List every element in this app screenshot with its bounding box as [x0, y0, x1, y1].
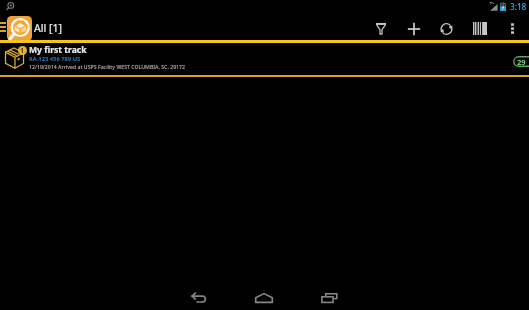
- button[interactable]: Open navigation drawer: [0, 14, 7, 43]
- button[interactable]: Recent apps: [313, 284, 346, 310]
- button[interactable]: Filter: [364, 14, 397, 43]
- staticText: 3:18: [510, 1, 527, 12]
- button[interactable]: Home: [247, 284, 280, 310]
- button[interactable]: Scan barcode: [463, 14, 496, 43]
- button[interactable]: Add track: [397, 14, 430, 43]
- button[interactable]: Refresh: [430, 14, 463, 43]
- staticText: 12/19/2014 Arrived at USPS Facility WEST…: [29, 63, 186, 70]
- button[interactable]: Back: [181, 284, 214, 310]
- staticText: RA 123 456 789 US: [29, 55, 81, 63]
- button[interactable]: More options: [496, 14, 529, 43]
- staticText: 1: [20, 46, 25, 55]
- button[interactable]: 1: [0, 42, 529, 75]
- staticText: All [1]: [34, 21, 63, 35]
- button[interactable]: 29 events: [513, 56, 529, 67]
- staticText: My first track: [29, 44, 87, 56]
- staticText: 29: [517, 57, 526, 67]
- button[interactable]: All [1]: [7, 14, 63, 43]
